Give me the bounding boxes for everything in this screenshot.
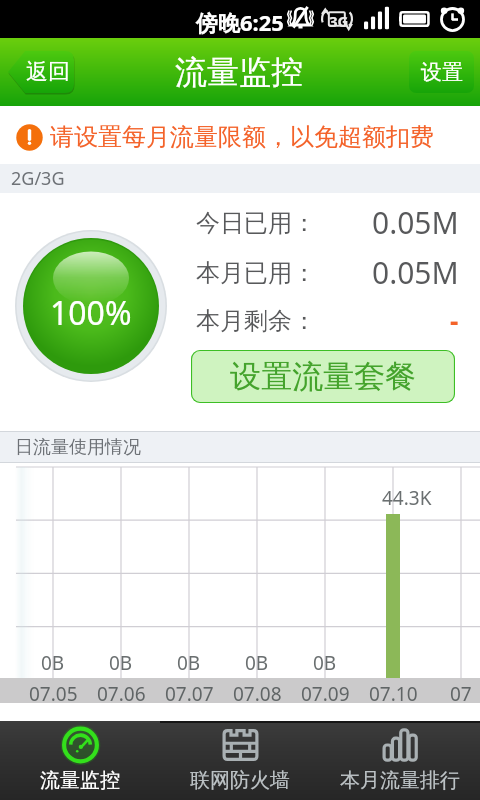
- button[interactable]: 设置: [409, 51, 474, 93]
- staticText: 0B: [245, 650, 269, 676]
- staticText: 返回: [26, 58, 70, 86]
- button[interactable]: 设置流量套餐: [191, 350, 455, 403]
- staticText: 本月已用：: [196, 258, 316, 288]
- staticText: 07.10: [369, 681, 418, 706]
- staticText: 请设置每月流量限额，以免超额扣费: [50, 122, 434, 152]
- staticText: 07.07: [165, 681, 214, 706]
- staticText: 傍晚6:25: [196, 7, 284, 37]
- staticText: 07: [450, 681, 472, 706]
- button[interactable]: 流量监控: [0, 721, 160, 800]
- button[interactable]: 请设置每月流量限额，以免超额扣费: [0, 106, 480, 164]
- staticText: 100%: [50, 291, 132, 335]
- staticText: 0B: [177, 650, 201, 676]
- staticText: 设置: [421, 59, 463, 85]
- staticText: 日流量使用情况: [15, 436, 141, 459]
- staticText: 07.05: [29, 681, 78, 706]
- staticText: 联网防火墙: [190, 768, 290, 793]
- staticText: 设置流量套餐: [230, 357, 416, 396]
- button[interactable]: 返回: [8, 51, 74, 93]
- button[interactable]: 本月流量排行: [320, 721, 480, 800]
- staticText: 07.08: [233, 681, 282, 706]
- staticText: 0.05M: [372, 252, 459, 293]
- staticText: 0B: [41, 650, 65, 676]
- staticText: 流量监控: [175, 52, 303, 92]
- staticText: 0B: [313, 650, 337, 676]
- staticText: 44.3K: [382, 485, 432, 511]
- staticText: 2G/3G: [11, 166, 65, 191]
- staticText: 3G: [329, 11, 349, 31]
- staticText: 07.06: [97, 681, 146, 706]
- staticText: 今日已用：: [196, 208, 316, 238]
- staticText: 流量监控: [40, 768, 120, 793]
- staticText: 本月剩余：: [196, 306, 316, 336]
- staticText: 07.09: [301, 681, 350, 706]
- staticText: 0.05M: [372, 202, 459, 243]
- staticText: 本月流量排行: [340, 768, 460, 793]
- staticText: -: [450, 303, 459, 338]
- button[interactable]: 联网防火墙: [160, 721, 320, 800]
- staticText: 0B: [109, 650, 133, 676]
